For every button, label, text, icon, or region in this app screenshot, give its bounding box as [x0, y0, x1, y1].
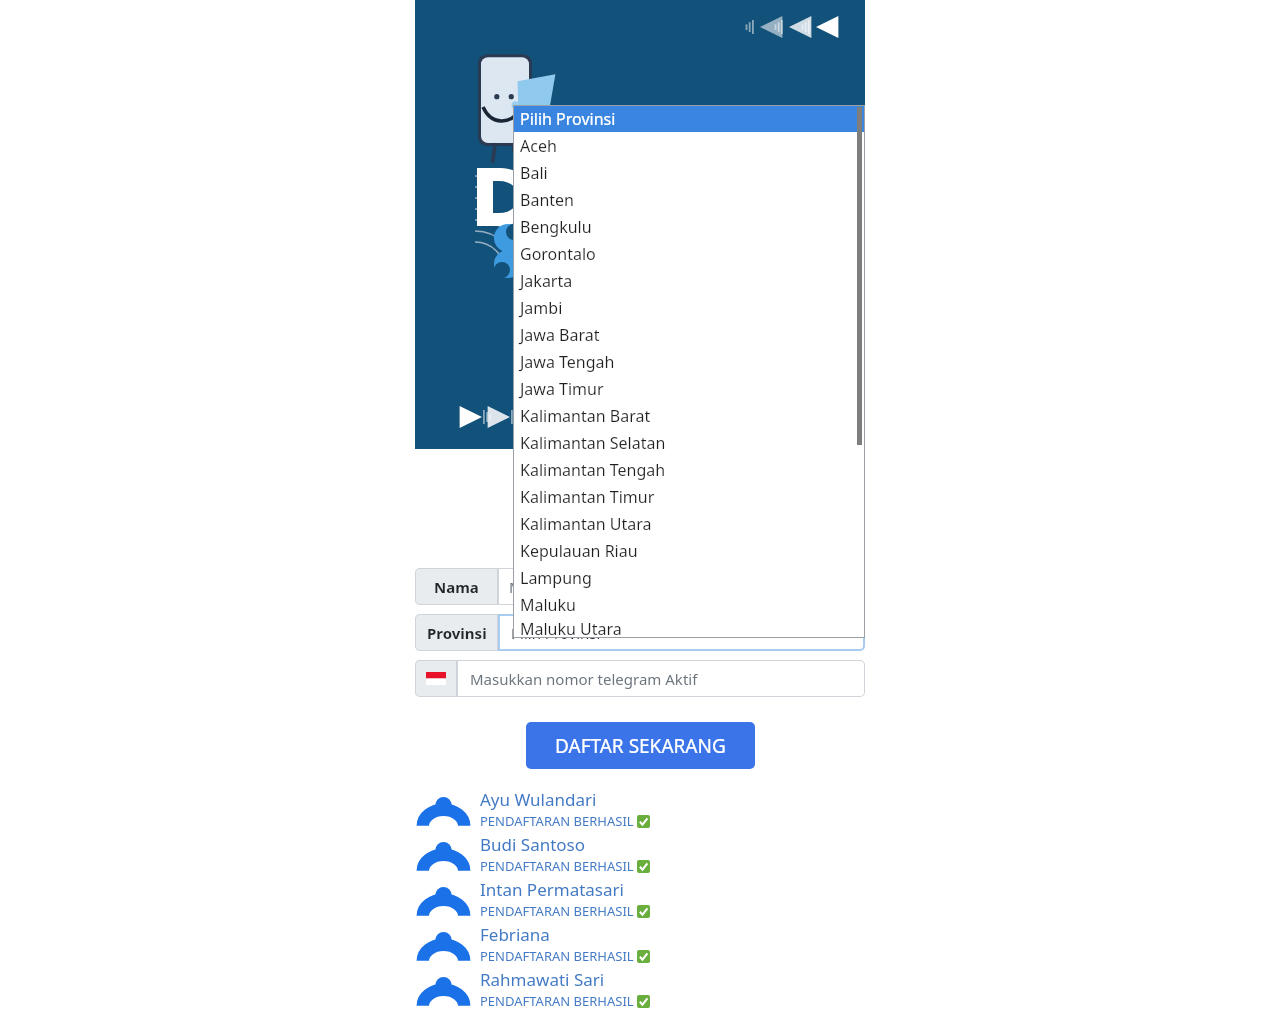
staticText: Pendaftaran Akun Terbaru [515, 520, 766, 546]
staticText: Intan Permatasari [480, 878, 624, 901]
button[interactable]: Pilih Provinsi [513, 105, 865, 132]
staticText: Maluku [520, 594, 576, 616]
staticText: PENDAFTARAN [529, 459, 751, 500]
button[interactable]: Gorontalo [513, 240, 865, 267]
button[interactable]: Intan Permatasari [415, 878, 865, 923]
staticText: DAFTAR SEKARANG [555, 733, 726, 759]
staticText: Rahmawati Sari [480, 968, 605, 991]
button[interactable]: Jawa Barat [513, 321, 865, 348]
staticText: Lampung [520, 567, 592, 589]
staticText: Masukkan nomor telegram Aktif [470, 669, 698, 689]
staticText: PENDAFTARAN BERHASIL [480, 947, 634, 965]
button[interactable]: Pilih Provinsi [498, 614, 865, 651]
button[interactable]: Ayu Wulandari [415, 788, 865, 833]
staticText: Provinsi [427, 623, 487, 643]
staticText: Jakarta [520, 270, 573, 292]
staticText: Kalimantan Timur [520, 486, 655, 508]
staticText: Jambi [520, 297, 563, 319]
staticText: Banten [520, 189, 574, 211]
staticText: PENDAFTARAN BERHASIL [480, 812, 634, 830]
button[interactable]: Kalimantan Selatan [513, 429, 865, 456]
button[interactable]: Kalimantan Timur [513, 483, 865, 510]
button[interactable]: Jambi [513, 294, 865, 321]
staticText: Maluku Utara [520, 618, 622, 638]
button[interactable]: Kalimantan Tengah [513, 456, 865, 483]
button[interactable]: Pilih kode negara [415, 660, 457, 697]
staticText: Jawa Timur [520, 378, 604, 400]
staticText: PENDAFTARAN BERHASIL [480, 857, 634, 875]
button[interactable]: Rahmawati Sari [415, 968, 865, 1013]
button[interactable]: Jakarta [513, 267, 865, 294]
staticText: Jawa Tengah [520, 351, 615, 373]
staticText: Gorontalo [520, 243, 596, 265]
button[interactable]: Bali [513, 159, 865, 186]
staticText: Kalimantan Tengah [520, 459, 666, 481]
button[interactable]: DAFTAR SEKARANG [526, 722, 755, 769]
button[interactable]: Febriana [415, 923, 865, 968]
staticText: Febriana [480, 923, 550, 946]
button[interactable]: Jawa Tengah [513, 348, 865, 375]
button[interactable]: Lampung [513, 564, 865, 591]
staticText: Aceh [520, 135, 557, 157]
staticText: PENDAFTARAN BERHASIL [480, 992, 634, 1010]
button[interactable]: Masukkan nomor telegram Aktif [457, 660, 865, 697]
staticText: Pilih Provinsi [520, 108, 616, 130]
staticText: Bengkulu [520, 216, 592, 238]
staticText: Ayu Wulandari [480, 788, 597, 811]
staticText: Kepulauan Riau [520, 540, 638, 562]
button[interactable]: Kalimantan Barat [513, 402, 865, 429]
button[interactable]: Bengkulu [513, 213, 865, 240]
staticText: Masukkan Nama Lengkap [509, 577, 692, 597]
staticText: Budi Santoso [480, 833, 586, 856]
button[interactable]: Maluku [513, 591, 865, 618]
staticText: Kalimantan Selatan [520, 432, 666, 454]
button[interactable]: Banten [513, 186, 865, 213]
button[interactable]: Aceh [513, 132, 865, 159]
button[interactable]: Kalimantan Utara [513, 510, 865, 537]
staticText: Jawa Barat [520, 324, 600, 346]
staticText: Kalimantan Barat [520, 405, 651, 427]
staticText: Pilih Provinsi [511, 623, 601, 643]
staticText: Kalimantan Utara [520, 513, 652, 535]
button[interactable]: Masukkan Nama Lengkap [498, 568, 865, 605]
button[interactable]: Budi Santoso [415, 833, 865, 878]
button[interactable]: Jawa Timur [513, 375, 865, 402]
staticText: Nama [434, 577, 479, 597]
staticText: Bali [520, 162, 548, 184]
button[interactable]: Kepulauan Riau [513, 537, 865, 564]
staticText: PENDAFTARAN BERHASIL [480, 902, 634, 920]
button[interactable]: Maluku Utara [513, 618, 865, 638]
